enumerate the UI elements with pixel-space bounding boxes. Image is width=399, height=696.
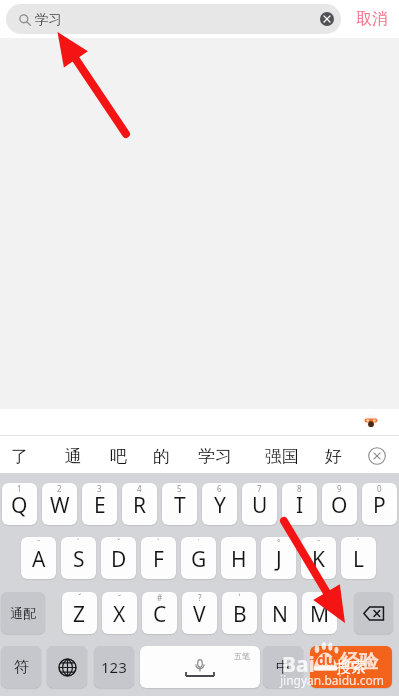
staticText: 5 xyxy=(177,483,182,494)
button[interactable]: 4 xyxy=(122,483,157,525)
staticText: R xyxy=(133,491,147,520)
staticText: A xyxy=(32,545,46,574)
button[interactable]: Switch input language xyxy=(47,646,87,688)
button[interactable]: ˇ xyxy=(62,592,97,634)
staticText: 123 xyxy=(101,657,127,677)
button[interactable]: 搜索 xyxy=(310,646,392,688)
button[interactable]: M xyxy=(302,592,337,634)
staticText: 学习 xyxy=(35,11,62,28)
button[interactable]: Close suggestions xyxy=(362,441,392,471)
button[interactable]: 通配 xyxy=(1,592,45,634)
staticText: 3 xyxy=(97,483,102,494)
button[interactable]: ˈ xyxy=(222,592,257,634)
staticText: Q xyxy=(11,491,28,520)
staticText: du xyxy=(317,650,335,669)
button[interactable]: ˉ xyxy=(301,537,336,579)
staticText: X xyxy=(113,600,126,629)
staticText: ˙ xyxy=(198,537,200,548)
button[interactable]: 8 xyxy=(282,483,317,525)
button[interactable]: 123 xyxy=(94,646,134,688)
button[interactable]: 通 xyxy=(59,441,87,471)
staticText: S xyxy=(73,545,85,574)
staticText: ˇ xyxy=(117,537,121,548)
staticText: O xyxy=(331,491,348,520)
staticText: 强国 xyxy=(265,446,299,467)
staticText: 通配 xyxy=(10,605,36,621)
staticText: ˈ xyxy=(239,592,241,603)
button[interactable]: 学习 xyxy=(193,441,237,471)
staticText: W xyxy=(50,491,70,520)
button[interactable]: # xyxy=(142,592,177,634)
staticText: I xyxy=(296,491,304,520)
staticText: ˊ xyxy=(77,537,80,548)
button[interactable]: 强国 xyxy=(260,441,304,471)
button[interactable]: Clear text xyxy=(320,12,334,26)
button[interactable]: ˊ xyxy=(341,537,376,579)
staticText: P xyxy=(373,491,386,520)
staticText: 符 xyxy=(14,658,29,677)
button[interactable]: ˙ xyxy=(181,537,216,579)
staticText: F xyxy=(153,545,164,574)
button[interactable]: 1 xyxy=(2,483,37,525)
button[interactable]: 3 xyxy=(82,483,117,525)
staticText: C xyxy=(153,600,167,629)
staticText: ˉ xyxy=(37,537,41,548)
button[interactable]: 6 xyxy=(202,483,237,525)
button[interactable]: 2 xyxy=(42,483,77,525)
button[interactable]: 0 xyxy=(362,483,397,525)
button[interactable]: ˉ xyxy=(21,537,56,579)
staticText: L xyxy=(353,545,365,574)
staticText: E xyxy=(94,491,106,520)
staticText: ° xyxy=(277,537,281,548)
staticText: T xyxy=(174,491,186,520)
staticText: D xyxy=(111,545,127,574)
staticText: 4 xyxy=(137,483,142,494)
button[interactable]: 7 xyxy=(242,483,277,525)
staticText: 2 xyxy=(57,483,62,494)
staticText: ˉ xyxy=(317,537,321,548)
staticText: 1 xyxy=(17,483,22,494)
button[interactable]: ˊ xyxy=(61,537,96,579)
staticText: 好 xyxy=(325,446,342,467)
button[interactable]: 5 xyxy=(162,483,197,525)
staticText: 中 xyxy=(276,658,291,677)
button[interactable]: N xyxy=(262,592,297,634)
button[interactable]: 吧 xyxy=(104,441,132,471)
staticText: B xyxy=(233,600,247,629)
button[interactable]: ? xyxy=(182,592,217,634)
button[interactable]: Backspace xyxy=(354,592,393,634)
staticText: U xyxy=(252,491,268,520)
staticText: 学习 xyxy=(198,446,232,467)
staticText: 吧 xyxy=(110,446,127,467)
staticText: 7 xyxy=(257,483,262,494)
staticText: 搜索 xyxy=(336,658,366,677)
staticText: jingyan.baidu.com xyxy=(280,672,384,688)
button[interactable]: 9 xyxy=(322,483,357,525)
staticText: 经验 xyxy=(340,650,378,674)
button[interactable]: 符 xyxy=(1,646,41,688)
button[interactable]: 好 xyxy=(319,441,347,471)
button[interactable]: H xyxy=(221,537,256,579)
staticText: ˋ xyxy=(157,537,160,548)
button[interactable]: ˉ xyxy=(102,592,137,634)
staticText: Y xyxy=(214,491,226,520)
button[interactable]: ˇ xyxy=(101,537,136,579)
button[interactable]: 学习 xyxy=(6,4,341,34)
staticText: Bai xyxy=(282,650,315,679)
button[interactable]: ˋ xyxy=(141,537,176,579)
staticText: K xyxy=(312,545,325,574)
staticText: ˉ xyxy=(118,592,122,603)
staticText: 9 xyxy=(337,483,342,494)
staticText: 取消 xyxy=(356,9,388,29)
staticText: ˇ xyxy=(78,592,82,603)
button[interactable]: 了 xyxy=(5,441,33,471)
button[interactable]: Space / voice input xyxy=(140,646,260,688)
button[interactable]: 取消 xyxy=(350,7,394,31)
button[interactable]: 的 xyxy=(147,441,175,471)
button[interactable]: 中 xyxy=(263,646,303,688)
staticText: N xyxy=(272,600,288,629)
staticText: 了 xyxy=(11,446,28,467)
button[interactable]: ° xyxy=(261,537,296,579)
staticText: 的 xyxy=(153,446,170,467)
staticText: 通 xyxy=(65,446,82,467)
